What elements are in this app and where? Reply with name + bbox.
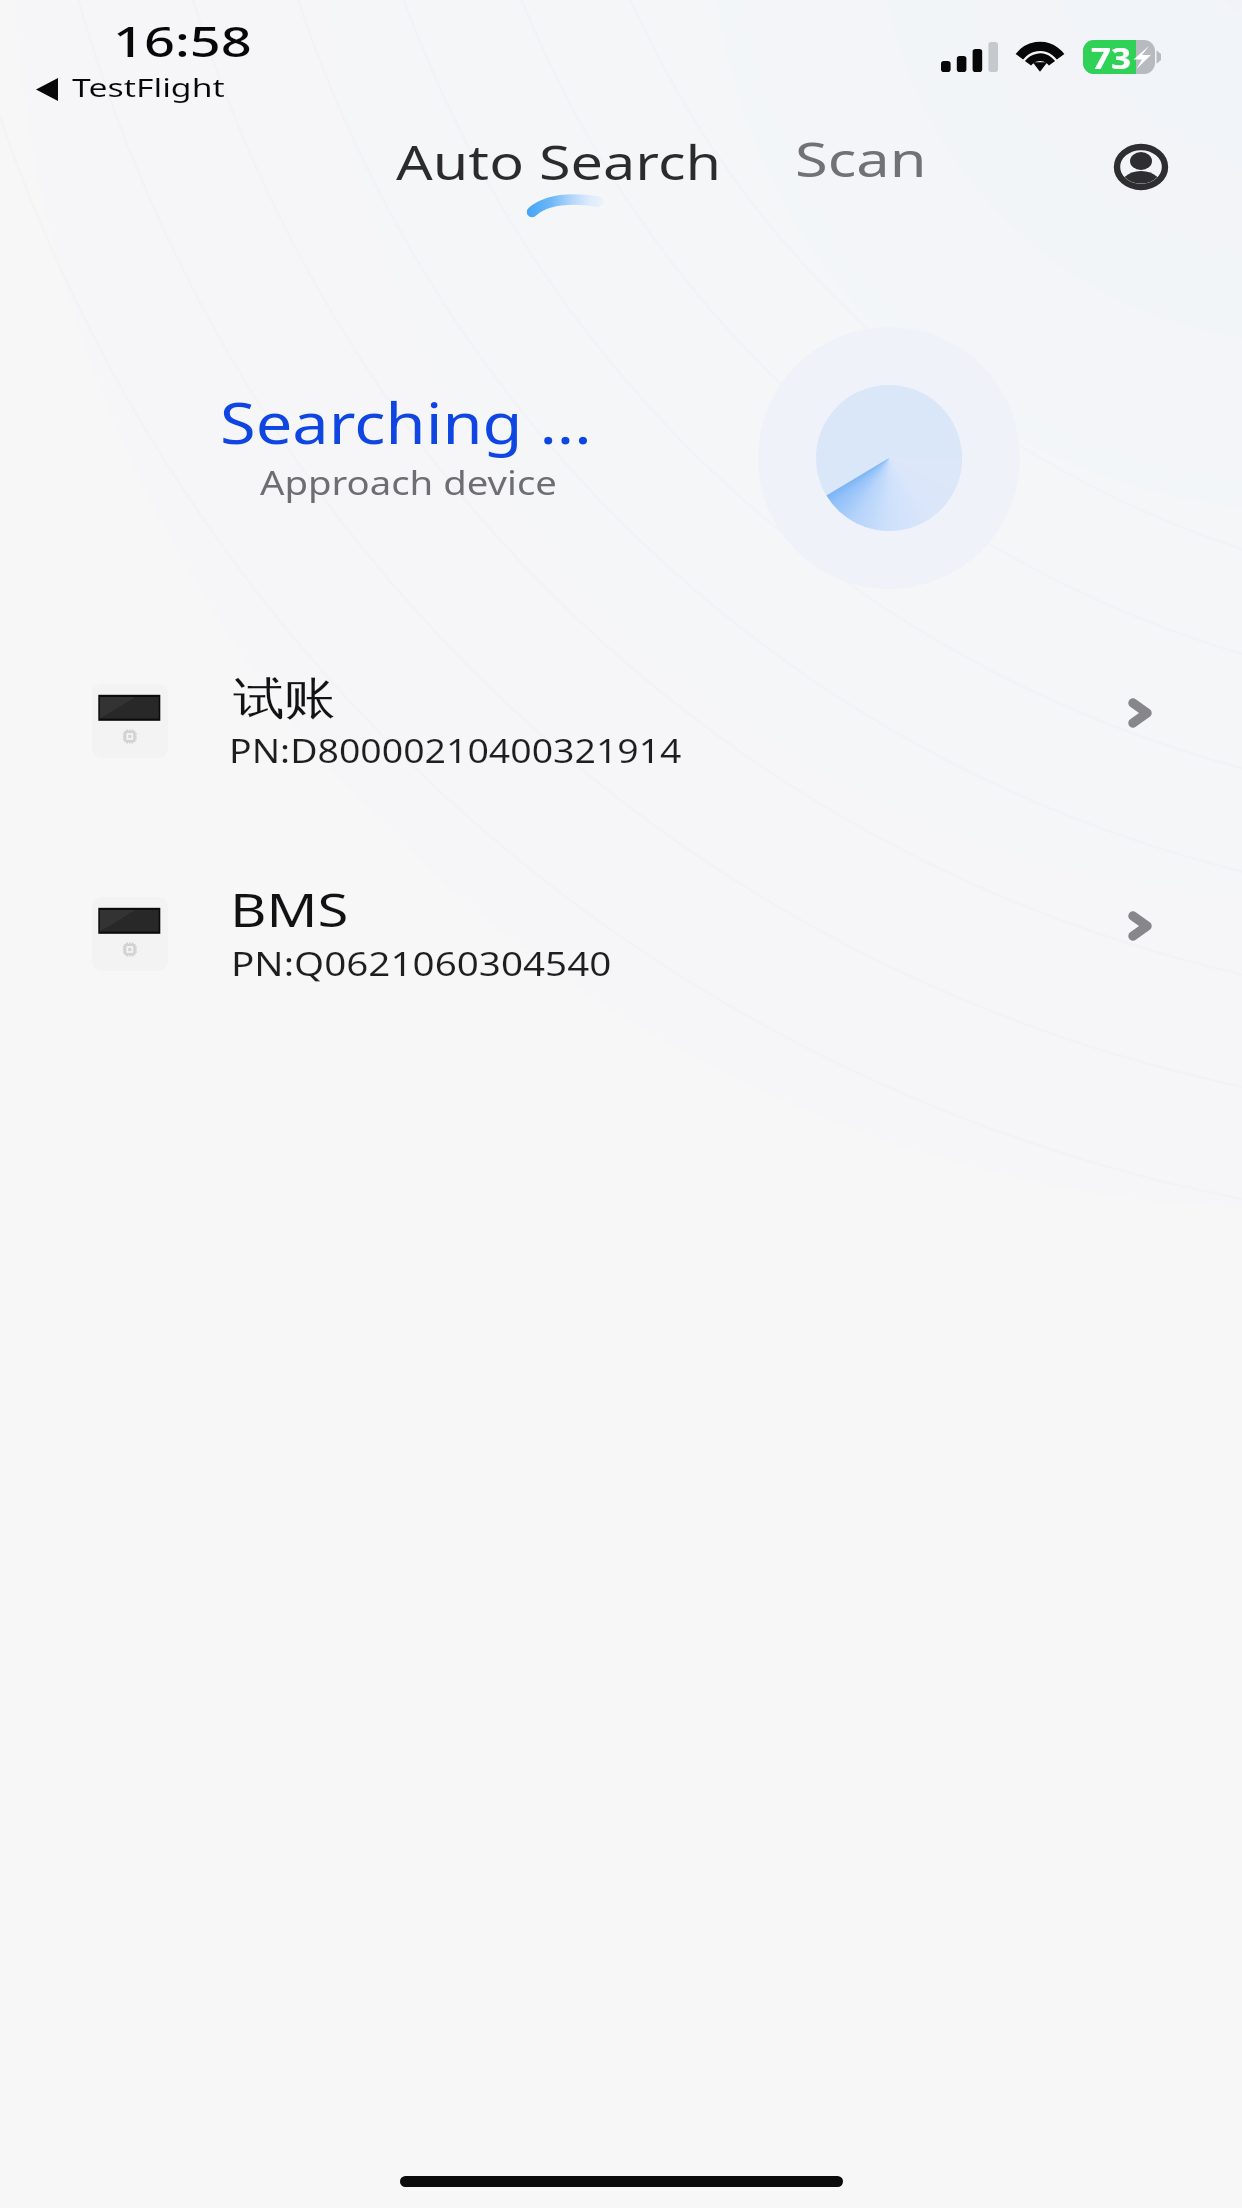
staticText: PN:D80000210400321914 [229,729,682,773]
staticText: 73 [1091,39,1132,73]
button[interactable]: Account [1098,122,1184,212]
staticText: Approach device [260,460,557,505]
staticText: TestFlight [72,69,225,104]
staticText: Auto Search [396,130,722,194]
button[interactable] [0,664,1242,784]
staticText: 16:58 [113,12,252,69]
staticText: 试账 [233,671,336,728]
staticText: Scan [795,126,926,191]
button[interactable] [0,877,1242,997]
staticText: PN:Q0621060304540 [231,941,612,986]
button[interactable] [778,110,940,194]
staticText: BMS [230,879,349,940]
staticText: Searching ... [220,383,593,461]
button[interactable] [376,110,737,194]
